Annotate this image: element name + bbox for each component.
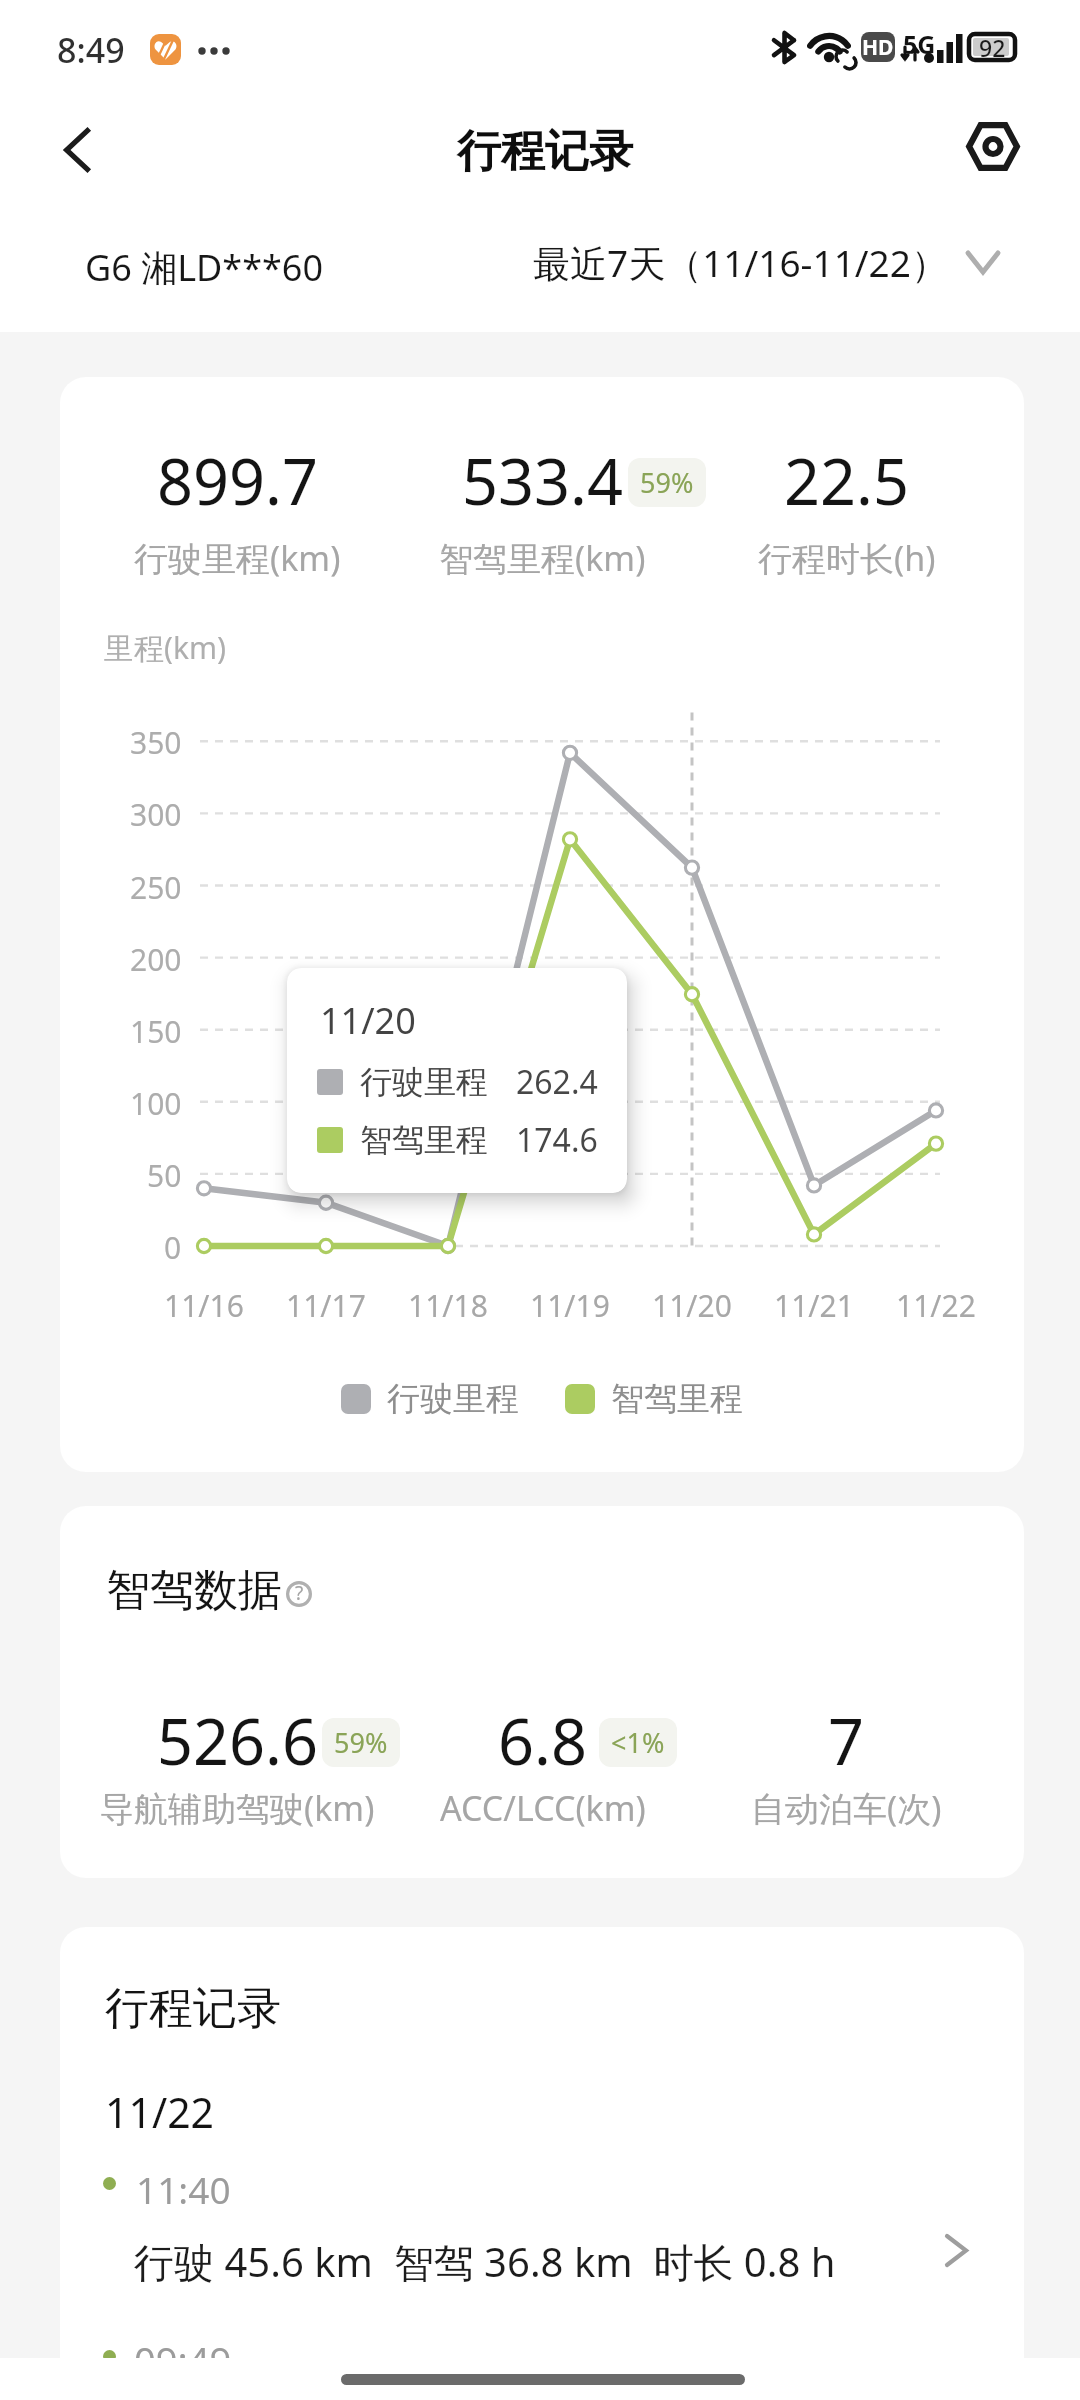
staticText: 行驶 45.6 km 智驾 36.8 km 时长 0.8 h <box>134 2234 836 2289</box>
staticText: 350 <box>130 722 182 763</box>
staticText: 里程(km) <box>104 627 227 668</box>
staticText: 11/17 <box>286 1285 366 1326</box>
staticText: G6 湘LD***60 <box>85 243 323 292</box>
staticText: ACC/LCC(km) <box>440 1785 646 1831</box>
staticText: 最近7天（11/16-11/22） <box>533 237 948 288</box>
staticText: 11/22 <box>105 2084 215 2140</box>
staticText: 11:40 <box>136 2164 231 2214</box>
staticText: 59% <box>334 1724 388 1761</box>
staticText: 250 <box>130 867 182 908</box>
staticText: 533.4 <box>462 438 624 524</box>
staticText: 262.4 <box>516 1060 598 1104</box>
staticText: 174.6 <box>516 1118 598 1162</box>
staticText: 22.5 <box>784 438 909 524</box>
staticText: 智驾里程 <box>360 1120 488 1160</box>
staticText: 300 <box>130 794 182 835</box>
button[interactable]: 智驾数据 <box>106 1563 312 1618</box>
staticText: 行驶里程(km) <box>134 535 341 581</box>
staticText: 行程记录 <box>105 1981 281 2036</box>
staticText: 526.6 <box>157 1698 319 1784</box>
button[interactable]: Back <box>32 105 122 195</box>
staticText: 智驾里程(km) <box>439 535 646 581</box>
staticText: 智驾数据 <box>106 1563 282 1618</box>
staticText: 11/21 <box>774 1285 854 1326</box>
staticText: 59% <box>640 464 694 501</box>
staticText: 行驶里程 <box>387 1378 519 1420</box>
staticText: 11/16 <box>164 1285 244 1326</box>
staticText: 200 <box>130 939 182 980</box>
button[interactable]: 11:40 <box>60 2159 1024 2287</box>
staticText: 11/20 <box>652 1285 732 1326</box>
staticText: 11/18 <box>408 1285 488 1326</box>
staticText: 行程记录 <box>457 124 633 179</box>
button[interactable]: 最近7天（11/16-11/22） <box>533 237 1000 288</box>
staticText: 150 <box>130 1011 182 1052</box>
staticText: 100 <box>130 1083 182 1124</box>
staticText: 11/20 <box>320 996 416 1045</box>
staticText: 92 <box>979 32 1006 62</box>
staticText: ? <box>295 1580 304 1606</box>
staticText: <1% <box>611 1724 665 1761</box>
button[interactable]: Settings <box>948 105 1038 195</box>
staticText: 0 <box>164 1227 182 1268</box>
staticText: 09:49 <box>134 2334 232 2386</box>
button[interactable]: 09:49 <box>60 2323 1024 2400</box>
staticText: 智驾里程 <box>611 1378 743 1420</box>
staticText: 899.7 <box>157 438 319 524</box>
staticText: 8:49 <box>57 27 125 73</box>
staticText: 行程时长(h) <box>758 535 936 581</box>
staticText: 50 <box>147 1155 182 1196</box>
staticText: 11/22 <box>896 1285 976 1326</box>
staticText: 行驶里程 <box>360 1062 488 1102</box>
staticText: 7 <box>828 1698 865 1784</box>
button[interactable]: G6 湘LD***60 <box>85 237 323 289</box>
staticText: 11/19 <box>530 1285 610 1326</box>
staticText: 导航辅助驾驶(km) <box>100 1785 375 1831</box>
staticText: 6.8 <box>498 1698 587 1784</box>
staticText: 5G <box>903 27 936 61</box>
staticText: 自动泊车(次) <box>751 1785 942 1831</box>
staticText: HD <box>862 33 894 62</box>
